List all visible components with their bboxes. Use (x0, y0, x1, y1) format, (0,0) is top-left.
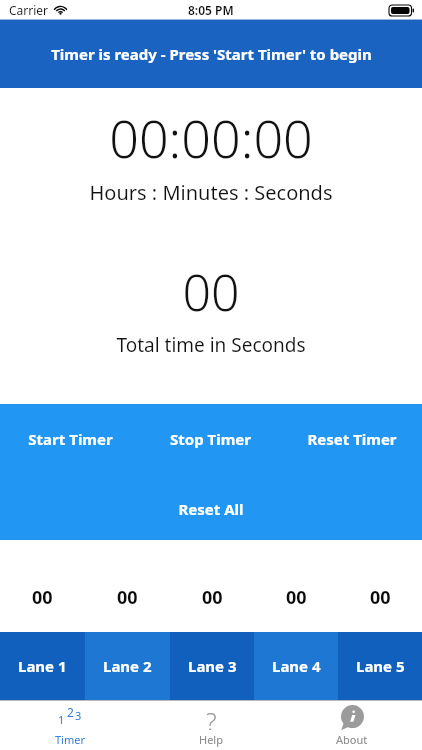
staticText: 00 (202, 585, 223, 610)
staticText: 1 (58, 712, 65, 727)
button[interactable]: Timer is ready - Press 'Start Timer' to … (0, 20, 422, 88)
staticText: Hours : Minutes : Seconds (0, 179, 422, 206)
staticText: Lane 1 (18, 656, 67, 676)
staticText: 00 (286, 585, 307, 610)
button[interactable]: Start Timer (0, 426, 140, 452)
staticText: Timer is ready - Press 'Start Timer' to … (51, 44, 372, 64)
staticText: 00:00:00 (0, 102, 422, 173)
button[interactable]: Lane 4 (254, 632, 338, 700)
staticText: Reset Timer (307, 429, 397, 449)
button[interactable]: Lane 3 (170, 632, 254, 700)
staticText: Lane 3 (188, 656, 237, 676)
button[interactable]: Reset Timer (281, 426, 422, 452)
button[interactable]: Lane 5 (338, 632, 422, 700)
staticText: Timer (55, 732, 85, 747)
staticText: 2 (67, 704, 74, 720)
staticText: Total time in Seconds (0, 332, 422, 358)
button[interactable]: Timer (0, 701, 140, 750)
staticText: Reset All (178, 499, 244, 519)
staticText: ? (206, 704, 217, 730)
button[interactable]: Lane 1 (0, 632, 85, 700)
staticText: Start Timer (28, 429, 113, 449)
staticText: About (336, 732, 368, 747)
staticText: Carrier (9, 2, 49, 18)
staticText: Lane 4 (272, 656, 321, 676)
staticText: 00 (0, 258, 422, 326)
staticText: Stop Timer (170, 429, 251, 449)
button[interactable]: Lane 2 (85, 632, 170, 700)
staticText: 3 (75, 708, 82, 723)
staticText: 00 (117, 585, 138, 610)
staticText: Lane 2 (103, 656, 152, 676)
staticText: Help (199, 732, 223, 747)
staticText: 00 (370, 585, 391, 610)
button[interactable]: About (281, 701, 422, 750)
staticText: 8:05 PM (188, 2, 234, 18)
button[interactable]: Help (140, 701, 281, 750)
button[interactable]: Stop Timer (140, 426, 281, 452)
button[interactable]: Reset All (140, 496, 281, 522)
staticText: 00 (32, 585, 53, 610)
staticText: Lane 5 (356, 656, 405, 676)
